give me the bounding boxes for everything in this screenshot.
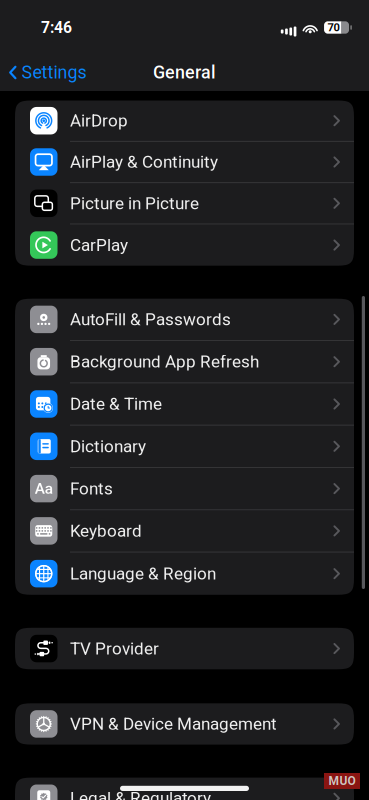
staticText: Legal & Regulatory [70,788,211,800]
button[interactable]: VPN & Device Management [15,703,354,745]
button[interactable]: AirPlay & Continuity [15,142,354,183]
button[interactable]: Background App Refresh [15,341,354,383]
staticText: VPN & Device Management [70,714,277,734]
staticText: Date & Time [70,394,162,414]
button[interactable]: AutoFill & Passwords [15,299,354,341]
button[interactable]: CarPlay [15,224,354,266]
staticText: AirDrop [70,111,128,131]
button[interactable]: TV Provider [15,628,354,669]
button[interactable]: Keyboard [15,510,354,552]
button[interactable]: Aa [15,468,354,510]
staticText: Keyboard [70,521,142,541]
staticText: Language & Region [70,564,216,584]
button[interactable]: Language & Region [15,552,354,595]
staticText: Aa [35,480,53,498]
staticText: Settings [22,62,87,83]
staticText: Dictionary [70,436,146,456]
staticText: AutoFill & Passwords [70,309,231,329]
staticText: General [153,62,216,83]
staticText: AirPlay & Continuity [70,152,218,172]
button[interactable]: Date & Time [15,383,354,426]
staticText: 7:46 [41,18,72,37]
staticText: TV Provider [70,638,159,658]
staticText: Background App Refresh [70,352,259,372]
button[interactable]: Legal & Regulatory [15,778,354,800]
staticText: MUO [328,774,355,788]
button[interactable]: Dictionary [15,426,354,468]
button[interactable]: AirDrop [15,100,354,142]
staticText: Picture in Picture [70,193,199,213]
staticText: 70 [328,21,340,34]
button[interactable]: Settings [0,55,87,90]
staticText: Fonts [70,479,113,499]
staticText: CarPlay [70,235,128,255]
button[interactable]: Picture in Picture [15,183,354,224]
